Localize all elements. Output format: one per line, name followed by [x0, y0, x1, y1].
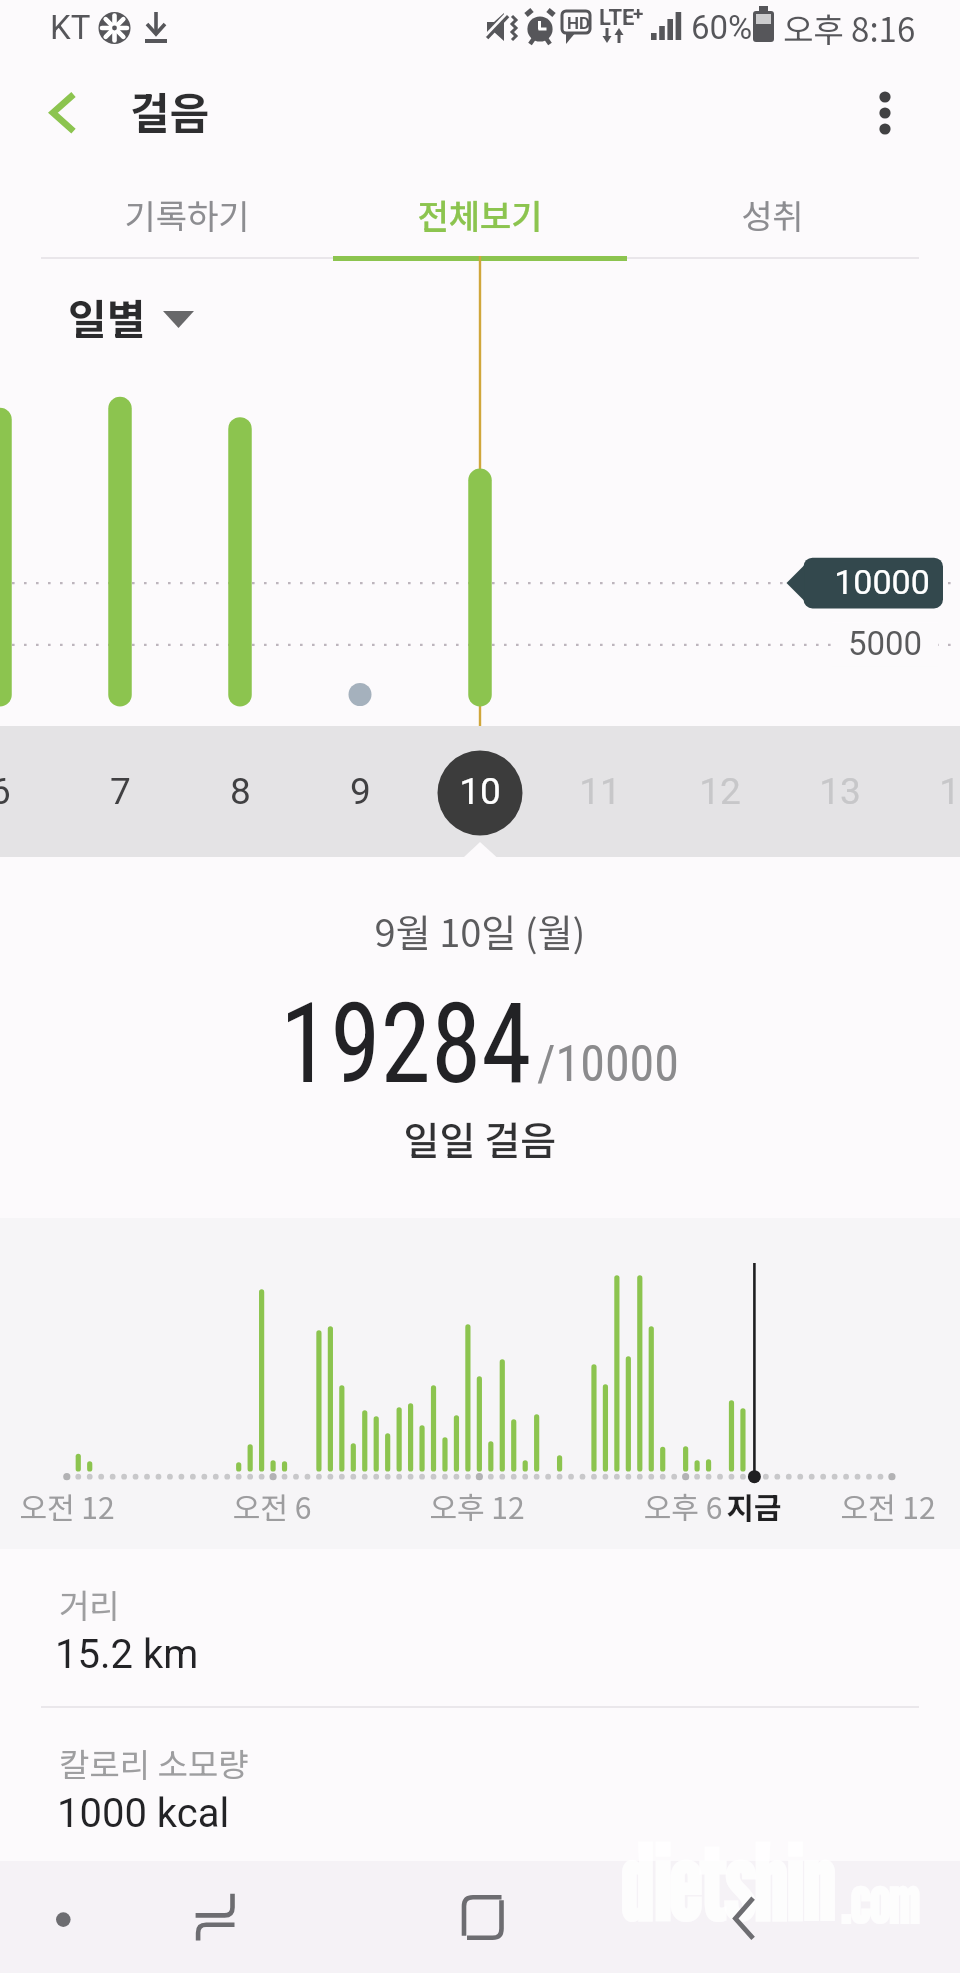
staticText: 오후 6	[573, 1484, 793, 1527]
button[interactable]: 12	[660, 726, 780, 857]
staticText: 걸음	[130, 79, 210, 141]
staticText: 일일 걸음	[0, 1110, 960, 1166]
staticText: 오전 12	[0, 1484, 177, 1527]
staticText: 오후 12	[367, 1484, 587, 1527]
staticText: +	[633, 2, 644, 24]
button[interactable]: 성취	[626, 166, 918, 262]
button[interactable]: 칼로리 소모량	[0, 1708, 960, 1861]
button[interactable]: 7	[60, 726, 180, 857]
button[interactable]: 일별	[68, 286, 194, 347]
button[interactable]: Back	[26, 82, 100, 144]
staticText: 오후 8:16	[783, 4, 916, 52]
staticText: HD	[567, 13, 591, 33]
staticText: 5000	[795, 624, 960, 663]
staticText: 지금	[644, 1484, 864, 1527]
staticText: 오전 12	[778, 1484, 960, 1527]
staticText: 6	[0, 770, 11, 813]
staticText: 거리	[59, 1580, 120, 1628]
staticText: 19284	[280, 979, 531, 1109]
button[interactable]: Back	[700, 1875, 800, 1961]
staticText: 1000 kcal	[57, 1790, 230, 1837]
staticText: 오전 6	[162, 1484, 382, 1527]
staticText: 9	[350, 770, 371, 813]
staticText: .com	[840, 1862, 919, 1939]
staticText: 칼로리 소모량	[59, 1739, 249, 1787]
button[interactable]: 거리	[0, 1549, 960, 1706]
button[interactable]: 6	[0, 726, 60, 857]
button[interactable]: 전체보기	[334, 166, 626, 262]
staticText: 7	[110, 770, 131, 813]
button[interactable]: 8	[180, 726, 300, 857]
staticText: 성취	[741, 190, 804, 239]
button[interactable]: 13	[780, 726, 900, 857]
staticText: 일별	[68, 286, 146, 347]
button[interactable]: 11	[540, 726, 660, 857]
staticText: 60%	[691, 8, 753, 47]
button[interactable]: 14	[900, 726, 960, 857]
staticText: 11	[579, 770, 621, 813]
staticText: KT	[50, 8, 91, 47]
staticText: 8	[230, 770, 251, 813]
button[interactable]: 10	[420, 726, 540, 857]
button[interactable]: Home	[430, 1875, 536, 1961]
button[interactable]: 기록하기	[41, 166, 333, 262]
staticText: 10	[459, 770, 501, 813]
staticText: 전체보기	[417, 190, 543, 239]
button[interactable]: 9	[300, 726, 420, 857]
staticText: 15.2 km	[55, 1631, 199, 1678]
staticText: 9월 10일 (월)	[0, 903, 960, 958]
staticText: /10000	[537, 1035, 679, 1094]
staticText: 기록하기	[124, 190, 250, 239]
staticText: dietshin	[620, 1822, 834, 1944]
button[interactable]: More options	[854, 80, 916, 142]
button[interactable]: Menu	[18, 1883, 108, 1957]
button[interactable]: Recent apps	[160, 1875, 270, 1961]
staticText: 10000	[782, 562, 960, 602]
staticText: 12	[699, 770, 741, 813]
staticText: LTE	[599, 5, 635, 31]
staticText: 14	[939, 770, 960, 813]
staticText: 13	[819, 770, 861, 813]
